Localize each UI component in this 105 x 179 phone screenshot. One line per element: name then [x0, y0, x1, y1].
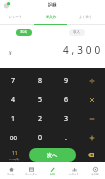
- staticText: 4: [11, 95, 16, 105]
- button[interactable]: 1: [0, 109, 27, 128]
- button[interactable]: 手入力: [33, 10, 68, 25]
- button[interactable]: 8: [27, 71, 53, 90]
- staticText: 2: [38, 114, 43, 124]
- button[interactable]: 7: [0, 71, 27, 90]
- button[interactable]: 9: [53, 71, 79, 90]
- button[interactable]: レシート: [0, 10, 33, 25]
- staticText: 7: [11, 76, 16, 86]
- staticText: よく使う: [79, 15, 92, 19]
- button[interactable]: 収入: [69, 29, 85, 36]
- button[interactable]: よく使う: [68, 10, 103, 25]
- staticText: 0: [38, 133, 43, 143]
- button[interactable]: 4: [0, 90, 27, 109]
- button[interactable]: Backspace: [76, 147, 105, 162]
- staticText: ホーム: [7, 173, 15, 176]
- staticText: .: [65, 133, 67, 143]
- staticText: カレンダー: [25, 173, 38, 176]
- button[interactable]: その他: [84, 162, 105, 179]
- staticText: レポート: [69, 173, 79, 176]
- staticText: 9: [64, 76, 69, 86]
- staticText: 3: [64, 114, 69, 124]
- staticText: その他: [91, 173, 99, 176]
- button[interactable]: レポート: [63, 162, 84, 179]
- button[interactable]: .: [53, 128, 79, 147]
- staticText: ¥: [9, 50, 12, 56]
- button[interactable]: 3: [53, 109, 79, 128]
- staticText: 記録: [50, 173, 55, 176]
- staticText: 手入力: [46, 15, 56, 19]
- button[interactable]: 支出: [16, 29, 32, 36]
- button[interactable]: [79, 90, 105, 109]
- staticText: 次へ: [47, 152, 58, 158]
- button[interactable]: 2: [27, 109, 53, 128]
- staticText: 4,300: [63, 43, 104, 57]
- staticText: 5: [38, 95, 43, 105]
- button[interactable]: Date: [0, 147, 29, 162]
- staticText: 記録: [48, 2, 57, 7]
- staticText: 8: [38, 76, 43, 86]
- button[interactable]: カレンダー: [21, 162, 42, 179]
- button[interactable]: [79, 109, 105, 128]
- staticText: 支出: [20, 30, 28, 35]
- staticText: 1: [11, 114, 16, 124]
- staticText: 11: [12, 150, 18, 156]
- button[interactable]: [79, 128, 105, 147]
- staticText: レシート: [9, 15, 22, 19]
- button[interactable]: [79, 71, 105, 90]
- button[interactable]: 0: [27, 128, 53, 147]
- button[interactable]: 6: [53, 90, 79, 109]
- staticText: 6: [64, 95, 69, 105]
- staticText: 11/14(木): [9, 157, 20, 160]
- button[interactable]: 5: [27, 90, 53, 109]
- staticText: 収入: [73, 30, 81, 35]
- button[interactable]: 次へ: [29, 148, 76, 162]
- button[interactable]: 記録: [42, 162, 63, 179]
- staticText: 00: [10, 134, 17, 142]
- button[interactable]: App: [3, 1, 11, 9]
- button[interactable]: ホーム: [0, 162, 21, 179]
- button[interactable]: 00: [0, 128, 27, 147]
